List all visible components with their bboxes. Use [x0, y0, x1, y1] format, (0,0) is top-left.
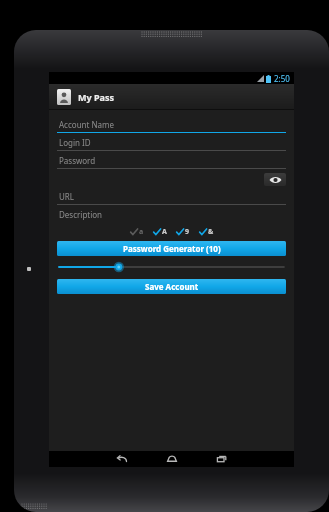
button[interactable]: Show password [264, 173, 286, 186]
button[interactable]: Account Name [57, 117, 286, 135]
staticText: Account Name [59, 119, 115, 130]
staticText: A [162, 227, 167, 237]
staticText: & [208, 227, 214, 237]
staticText: Save Account [145, 281, 199, 292]
button[interactable]: Recent apps [210, 451, 234, 467]
staticText: Password [59, 155, 96, 166]
button[interactable]: URL [57, 189, 286, 207]
button[interactable] [57, 261, 286, 273]
button[interactable]: Save Account [57, 279, 286, 294]
staticText: 9 [185, 227, 190, 237]
button[interactable]: a [130, 227, 144, 237]
button[interactable]: Back [110, 451, 134, 467]
staticText: 2:50 [274, 73, 290, 84]
button[interactable]: & [199, 227, 214, 237]
staticText: a [139, 227, 144, 237]
staticText: URL [59, 191, 75, 202]
staticText: Login ID [59, 137, 91, 148]
staticText: Password Generator (10) [123, 243, 221, 254]
button[interactable]: Password Generator (10) [57, 241, 286, 256]
button[interactable]: A [153, 227, 167, 237]
button[interactable]: Description [57, 207, 286, 225]
button[interactable]: Password [57, 153, 286, 171]
staticText: My Pass [78, 91, 114, 103]
button[interactable]: Login ID [57, 135, 286, 153]
button[interactable]: Home [160, 451, 184, 467]
staticText: Description [59, 209, 103, 220]
button[interactable]: 9 [176, 227, 190, 237]
